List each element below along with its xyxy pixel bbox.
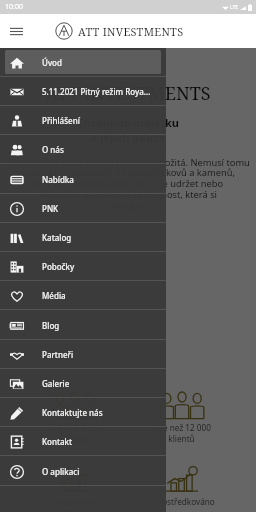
staticText: Investice do zlata a diamantů není složi… [6, 156, 250, 212]
staticText: ATT INVESTMENTS [45, 81, 211, 106]
button[interactable]: Přihlášení [0, 106, 166, 135]
staticText: ATT INVESTMENTS [78, 24, 184, 39]
staticText: Přihlášení [42, 115, 80, 126]
staticText: Úvod [42, 57, 62, 68]
button[interactable]: Kontakt [0, 427, 166, 456]
staticText: Galerie [42, 378, 70, 389]
staticText: Pobočky [42, 261, 75, 272]
button[interactable]: Partneři [0, 340, 166, 369]
staticText: Zprostředkováno [149, 496, 215, 507]
staticText: Blog [42, 320, 60, 331]
button[interactable]: Média [0, 281, 166, 310]
staticText: Nabídka [42, 174, 74, 185]
button[interactable]: Pobočky [0, 252, 166, 281]
staticText: O nás [42, 144, 64, 155]
staticText: LTE [230, 4, 239, 11]
staticText: 5.11.2021 Pitný režim Roya... [42, 86, 151, 97]
staticText: Média [42, 290, 66, 301]
button[interactable]: Open navigation drawer [0, 15, 32, 47]
button[interactable]: O aplikaci [0, 456, 166, 486]
staticText: Kontakt [42, 436, 73, 447]
staticText: Kontaktujte nás [42, 407, 103, 418]
button[interactable]: Nabídka [0, 164, 166, 194]
button[interactable]: Galerie [0, 369, 166, 398]
staticText: 10:00 [5, 2, 23, 12]
button[interactable]: 5.11.2021 Pitný režim Roya... [0, 77, 166, 106]
staticText: Více než 3 000 partnerů [47, 422, 102, 444]
button[interactable]: Úvod [0, 48, 166, 77]
staticText: Partneři [42, 349, 74, 360]
button[interactable]: O nás [0, 135, 166, 164]
button[interactable]: Blog [0, 310, 166, 340]
staticText: Chráníme majetku v jejich penze [77, 115, 179, 145]
button[interactable]: Katalog [0, 223, 166, 252]
button[interactable]: PNK [0, 194, 166, 223]
button[interactable]: Kontaktujte nás [0, 398, 166, 427]
staticText: O aplikaci [42, 466, 80, 477]
staticText: Katalog [42, 232, 72, 243]
staticText: Více než 12 000 klientů [152, 422, 211, 444]
staticText: PNK [42, 203, 59, 214]
